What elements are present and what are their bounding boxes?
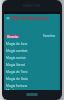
button[interactable]: Magia fortuna	[4, 82, 60, 89]
staticText: Magia combat	[6, 49, 28, 53]
staticText: Etiquetas	[7, 35, 19, 38]
button[interactable]: Magia literat	[4, 61, 60, 68]
button[interactable]: Magia combat	[4, 47, 60, 54]
button[interactable]: Magia cocina	[4, 54, 60, 61]
staticText: Magia de Toro	[6, 70, 28, 74]
staticText: SAMSUNG	[23, 4, 41, 8]
staticText: Magia literat	[6, 63, 25, 67]
staticText: Magia fortuna	[6, 84, 28, 88]
staticText: Magia cocina	[6, 56, 26, 60]
staticText: Mis Etiquetas	[11, 14, 48, 21]
button[interactable]: Magia de luna	[4, 40, 60, 47]
button[interactable]: Magia de Gato	[4, 75, 60, 82]
button[interactable]: Menu	[6, 16, 10, 20]
staticText: Magia de luna	[6, 42, 28, 46]
staticText: Magia de Gato	[6, 77, 28, 81]
button[interactable]: Home	[26, 93, 38, 96]
button[interactable]: Menu	[4, 14, 60, 21]
button[interactable]: Etiquetas	[6, 35, 19, 38]
staticText: Magia	[6, 89, 16, 90]
button[interactable]: Magia	[4, 89, 60, 90]
staticText: Favoritos	[43, 34, 56, 38]
button[interactable]: Magia de Toro	[4, 68, 60, 75]
